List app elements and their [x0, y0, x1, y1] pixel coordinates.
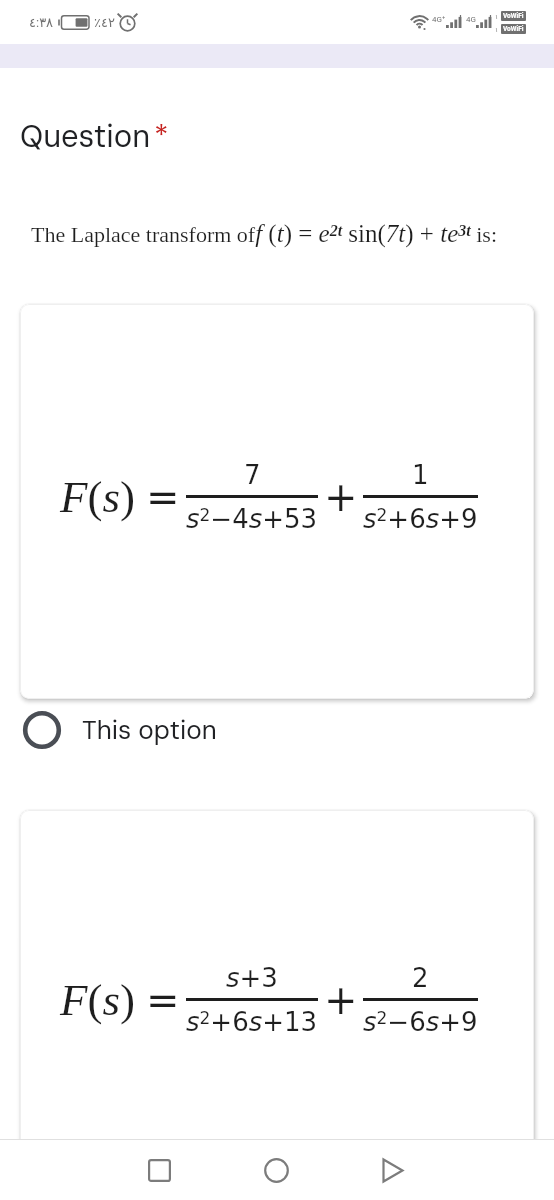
staticText: Question — [20, 116, 151, 156]
staticText: VoWiFi — [503, 25, 524, 33]
staticText: s+3 — [226, 963, 278, 993]
staticText: s2−4s+53 — [186, 504, 318, 534]
button[interactable]: Back — [363, 1140, 423, 1200]
staticText: 4G — [466, 15, 476, 24]
staticText: s2−6s+9 — [363, 1007, 478, 1037]
button[interactable]: F(s) — [20, 304, 534, 699]
staticText: This option — [82, 713, 217, 747]
staticText: + — [324, 977, 358, 1024]
staticText: The Laplace transform off (t) = e2t sin(… — [31, 220, 497, 248]
staticText: ٤:٣٨ — [29, 15, 54, 30]
staticText: * — [154, 115, 169, 154]
staticText: F(s) — [60, 975, 135, 1025]
staticText: = — [146, 977, 180, 1024]
button[interactable]: Home — [246, 1140, 306, 1200]
staticText: s2+6s+13 — [186, 1007, 318, 1037]
staticText: ٪٤٢ — [94, 15, 115, 30]
staticText: ١ — [495, 26, 499, 33]
staticText: s2+6s+9 — [363, 504, 478, 534]
button[interactable]: This option — [0, 699, 554, 761]
staticText: = — [146, 474, 180, 521]
staticText: ١ — [495, 13, 499, 20]
button[interactable]: F(s) — [20, 810, 534, 1200]
staticText: VoWiFi — [503, 12, 524, 20]
button[interactable]: Recent apps — [129, 1140, 189, 1200]
staticText: 1 — [412, 460, 429, 490]
staticText: 7 — [244, 460, 261, 490]
staticText: + — [324, 474, 358, 521]
staticText: 2 — [412, 963, 429, 993]
staticText: F(s) — [60, 472, 135, 522]
staticText: 4G⁺ — [432, 15, 446, 24]
